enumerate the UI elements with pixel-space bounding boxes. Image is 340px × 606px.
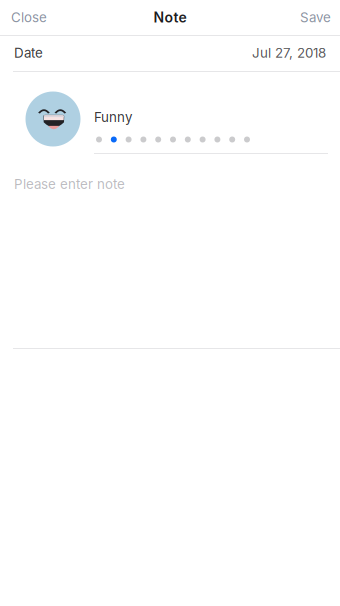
button[interactable]: Date xyxy=(0,36,340,70)
staticText: Date xyxy=(14,45,43,61)
staticText: Close xyxy=(11,9,47,25)
button[interactable]: Mood: Funny xyxy=(25,91,80,146)
staticText: Save xyxy=(300,9,331,25)
staticText: Note xyxy=(153,9,186,26)
button[interactable]: Close xyxy=(0,0,58,35)
button[interactable]: Please enter note xyxy=(13,164,340,348)
staticText: Jul 27, 2018 xyxy=(252,45,326,61)
button[interactable]: Save xyxy=(291,0,340,35)
staticText: Funny xyxy=(94,109,132,125)
staticText: Please enter note xyxy=(14,176,125,192)
button[interactable]: Mood page control, Funny, page 2 of 11 xyxy=(94,91,328,153)
